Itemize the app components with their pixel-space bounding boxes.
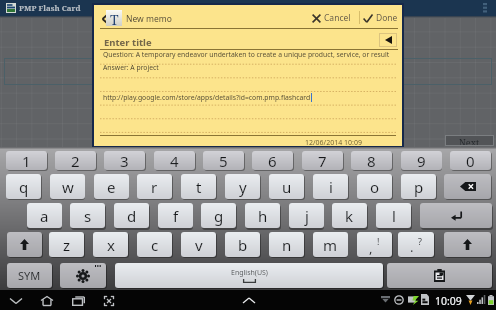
button[interactable]: Cancel [312,12,351,24]
button[interactable]: 2 [55,151,96,170]
staticText: PMP Flash Card [19,3,81,14]
staticText: r [151,177,158,197]
staticText: 2 [71,151,80,170]
button[interactable]: Hide keyboard [238,293,260,308]
button[interactable]: o [357,174,392,199]
button[interactable]: 4 [154,151,195,170]
button[interactable]: 6 [252,151,293,170]
staticText: Answer: A project [103,63,159,72]
button[interactable]: Home [35,293,59,308]
staticText: d [127,206,137,226]
button[interactable]: Backspace [444,174,491,199]
staticText: i [329,177,333,197]
button[interactable]: s [70,203,105,228]
button[interactable]: h [245,203,280,228]
staticText: v [195,235,203,255]
button[interactable]: Period [398,232,434,257]
staticText: z [63,235,71,255]
staticText: Cancel [324,12,351,24]
button[interactable]: Settings [60,263,106,288]
staticText: e [107,177,116,197]
button[interactable]: Done [363,12,398,24]
staticText: Enter title [104,36,152,49]
button[interactable]: r [137,174,172,199]
button[interactable]: 9 [401,151,442,170]
staticText: q [19,177,29,197]
staticText: 5 [219,151,228,170]
button[interactable]: z [49,232,84,257]
button[interactable]: f [158,203,193,228]
staticText: x [107,235,115,255]
staticText: 7 [318,151,327,170]
staticText: m [323,235,338,255]
button[interactable]: u [269,174,304,199]
button[interactable]: i [313,174,348,199]
button[interactable]: 5 [203,151,244,170]
staticText: j [305,206,309,226]
staticText: t [196,177,202,197]
button[interactable]: v [181,232,216,257]
button[interactable]: 7 [302,151,343,170]
staticText: n [282,235,292,255]
button[interactable]: l [376,203,411,228]
button[interactable]: More options [479,1,491,15]
button[interactable]: Back [100,14,109,24]
button[interactable]: 3 [104,151,145,170]
staticText: y [239,177,247,197]
button[interactable]: Comma [357,232,392,257]
button[interactable]: y [225,174,260,199]
staticText: ? [418,235,422,247]
staticText: 0 [466,151,475,170]
button[interactable]: 8 [351,151,392,170]
button[interactable]: Space [115,263,383,288]
button[interactable]: n [269,232,304,257]
button[interactable]: m [313,232,348,257]
button[interactable]: b [225,232,260,257]
button[interactable]: d [114,203,149,228]
button[interactable]: Screenshot [97,293,121,308]
button[interactable]: Enter [420,203,492,228]
button[interactable]: Text style [106,10,122,26]
staticText: c [151,235,159,255]
staticText: . [410,238,414,256]
button[interactable]: k [332,203,367,228]
staticText: f [173,206,179,226]
button[interactable]: Recent apps [66,293,90,308]
button[interactable]: g [201,203,236,228]
staticText: s [84,206,92,226]
button[interactable]: c [137,232,172,257]
button[interactable]: p [401,174,436,199]
staticText: New memo [126,13,172,25]
button[interactable]: Shift [444,232,491,257]
staticText: ! [377,235,380,247]
button[interactable]: Clipboard [387,263,492,288]
staticText: g [214,206,224,226]
staticText: 8 [367,151,376,170]
staticText: w [62,177,74,197]
button[interactable]: x [93,232,128,257]
staticText: http://play.google.com/store/apps/detail… [103,93,311,102]
button[interactable]: Shift [7,232,42,257]
staticText: , [369,239,373,257]
button[interactable]: q [6,174,41,199]
button[interactable]: t [181,174,216,199]
button[interactable]: a [27,203,62,228]
button[interactable]: SYM [7,263,52,288]
staticText: k [345,206,354,226]
staticText: a [40,206,49,226]
staticText: o [370,177,380,197]
button[interactable]: Back [4,293,28,308]
button[interactable]: j [289,203,324,228]
staticText: l [392,206,396,226]
staticText: 10:09 [435,294,462,308]
button[interactable]: 0 [450,151,491,170]
button[interactable]: Collapse [379,33,397,47]
staticText: 6 [268,151,277,170]
staticText: 12/06/2014 10:09 [305,138,362,148]
button[interactable]: Next [446,136,493,145]
button[interactable]: 1 [6,151,47,170]
staticText: English(US) [231,268,268,278]
button[interactable]: e [94,174,129,199]
staticText: Next [459,136,480,145]
button[interactable]: w [50,174,85,199]
